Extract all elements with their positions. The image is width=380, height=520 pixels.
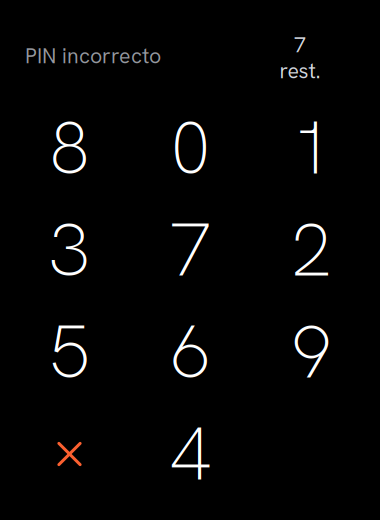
button[interactable]: Delete — [9, 403, 130, 505]
staticText: 9 — [291, 304, 332, 400]
staticText: 7 — [294, 31, 306, 59]
button[interactable]: 3 — [9, 199, 130, 301]
staticText: 1 — [291, 100, 332, 196]
button[interactable]: 5 — [9, 301, 130, 403]
staticText: 6 — [170, 304, 211, 400]
staticText: PIN incorrecto — [25, 42, 161, 70]
button[interactable]: 0 — [130, 97, 251, 199]
button[interactable]: 8 — [9, 97, 130, 199]
staticText: 2 — [291, 202, 332, 298]
button[interactable]: 1 — [251, 97, 372, 199]
staticText: 8 — [49, 100, 90, 196]
button[interactable]: 4 — [130, 403, 251, 505]
staticText: 7 — [170, 202, 211, 298]
button[interactable]: 2 — [251, 199, 372, 301]
button[interactable]: 6 — [130, 301, 251, 403]
staticText: 0 — [170, 100, 211, 196]
staticText: 3 — [49, 202, 90, 298]
staticText: 5 — [49, 304, 90, 400]
button[interactable]: 7 — [130, 199, 251, 301]
staticText: rest. — [279, 57, 320, 85]
staticText: 4 — [170, 406, 211, 502]
button[interactable]: 9 — [251, 301, 372, 403]
